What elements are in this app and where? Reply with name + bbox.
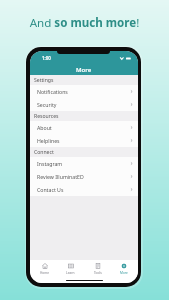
staticText: Home	[40, 271, 50, 275]
staticText: Review IlluminatED	[37, 173, 84, 180]
button[interactable]: Review IlluminatED	[30, 170, 138, 183]
staticText: More	[76, 65, 92, 73]
staticText: Connect	[34, 149, 54, 156]
button[interactable]: Learn	[58, 260, 83, 277]
staticText: Notifications	[37, 88, 68, 95]
staticText: About	[37, 124, 52, 131]
staticText: And so much more!	[0, 15, 169, 31]
button[interactable]: Contact Us	[30, 183, 138, 196]
staticText: More	[120, 271, 128, 275]
button[interactable]: Tools	[85, 260, 110, 277]
staticText: Settings	[34, 77, 54, 84]
button[interactable]: More	[111, 260, 136, 277]
button[interactable]: About	[30, 121, 138, 134]
staticText: Instagram	[37, 160, 63, 167]
button[interactable]: Helplines	[30, 134, 138, 147]
button[interactable]: Home	[32, 260, 57, 277]
staticText: Contact Us	[37, 186, 64, 193]
staticText: Helplines	[37, 137, 60, 144]
button[interactable]: Instagram	[30, 157, 138, 170]
staticText: Security	[37, 101, 57, 108]
button[interactable]: Notifications	[30, 85, 138, 98]
staticText: Learn	[66, 271, 75, 275]
button[interactable]: Security	[30, 98, 138, 111]
staticText: Resources	[34, 113, 59, 120]
staticText: Tools	[94, 271, 102, 275]
staticText: 1:00	[42, 55, 51, 61]
